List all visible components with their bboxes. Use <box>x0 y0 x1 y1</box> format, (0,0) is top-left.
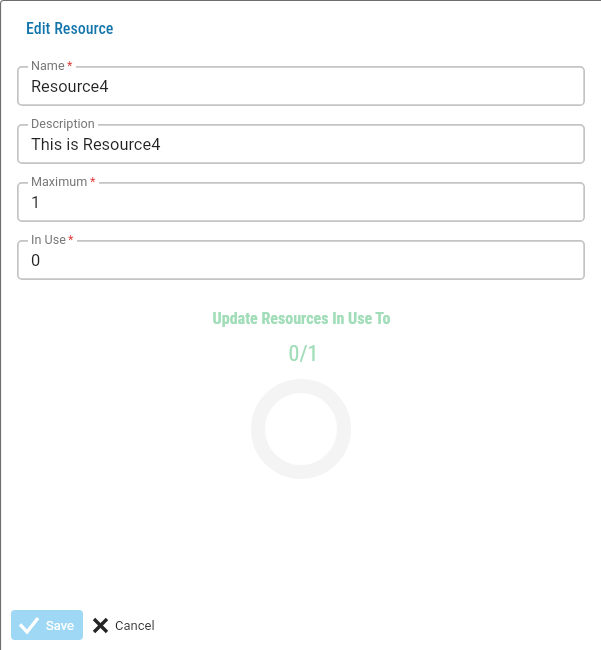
staticText: Resource4 <box>31 77 109 96</box>
button[interactable]: Resource4 <box>17 66 585 106</box>
staticText: Name <box>31 58 65 73</box>
staticText: Update Resources In Use To <box>1 309 601 328</box>
staticText: 0/1 <box>3 341 601 367</box>
staticText: 1 <box>31 193 41 212</box>
staticText: * <box>68 232 74 247</box>
staticText: Save <box>46 618 74 633</box>
button[interactable]: Cancel <box>91 610 155 640</box>
button[interactable]: Edit Resource <box>26 19 114 38</box>
staticText: This is Resource4 <box>31 135 161 154</box>
staticText: Cancel <box>115 618 155 633</box>
staticText: Maximum <box>31 174 88 189</box>
staticText: In Use <box>31 232 66 247</box>
staticText: 0 <box>31 251 41 270</box>
button[interactable]: Save <box>11 610 83 640</box>
other: Cancel <box>94 619 107 632</box>
staticText: * <box>90 174 96 189</box>
other: Save <box>20 618 38 632</box>
staticText: Description <box>31 116 95 131</box>
button[interactable]: 0 <box>17 240 585 280</box>
button[interactable]: This is Resource4 <box>17 124 585 164</box>
staticText: * <box>67 58 73 73</box>
button[interactable]: 1 <box>17 182 585 222</box>
